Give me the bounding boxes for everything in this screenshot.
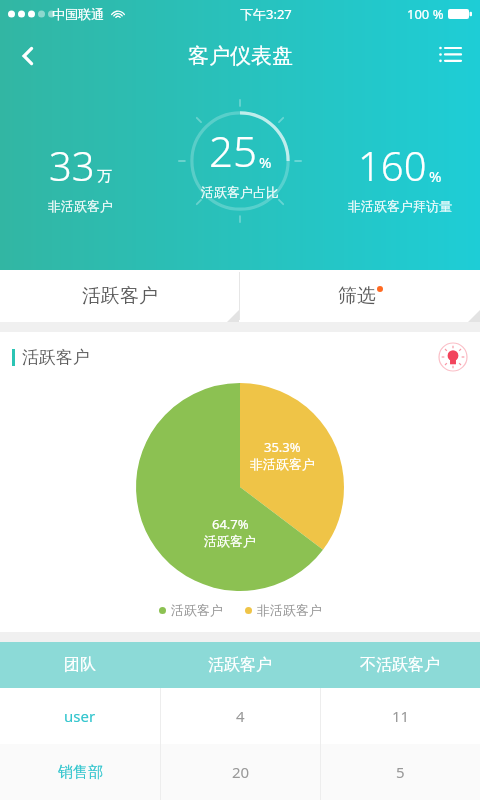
button[interactable]: 销售部 — [0, 744, 480, 800]
staticText: 33 — [49, 138, 95, 192]
staticText: 下午3:27 — [240, 5, 292, 23]
staticText: 11 — [392, 706, 410, 726]
staticText: % — [429, 166, 442, 186]
staticText: 100 % — [407, 5, 444, 23]
staticText: 35.3% — [264, 438, 301, 456]
staticText: 活跃客户 — [160, 655, 320, 675]
staticText: 客户仪表盘 — [188, 43, 293, 69]
staticText: 中国联通 — [52, 6, 104, 22]
staticText: 筛选 — [338, 284, 376, 308]
staticText: 活跃客户 — [22, 347, 90, 368]
staticText: 活跃客户占比 — [201, 184, 279, 200]
staticText: 64.7% — [212, 515, 249, 533]
staticText: 团队 — [0, 655, 160, 675]
button[interactable]: Tips — [438, 342, 468, 372]
button[interactable]: 活跃客户 — [0, 270, 239, 322]
staticText: 活跃客户 — [171, 602, 223, 618]
staticText: % — [259, 152, 272, 172]
button[interactable]: Menu — [428, 34, 472, 78]
staticText: 非活跃客户拜访量 — [348, 198, 452, 214]
button[interactable]: user — [0, 688, 480, 744]
staticText: 20 — [232, 762, 250, 782]
staticText: 活跃客户 — [204, 533, 256, 549]
staticText: 活跃客户 — [82, 284, 158, 308]
staticText: user — [64, 706, 96, 726]
staticText: 销售部 — [58, 763, 103, 782]
staticText: 不活跃客户 — [320, 655, 480, 675]
staticText: 4 — [236, 706, 245, 726]
staticText: 万 — [97, 167, 112, 186]
staticText: 非活跃客户 — [257, 602, 322, 618]
button[interactable]: Back — [6, 34, 50, 78]
staticText: 5 — [396, 762, 405, 782]
staticText: 非活跃客户 — [250, 456, 315, 472]
button[interactable]: 筛选 — [240, 270, 480, 322]
staticText: 25 — [209, 122, 257, 179]
staticText: 非活跃客户 — [48, 198, 113, 214]
staticText: 160 — [358, 138, 427, 192]
